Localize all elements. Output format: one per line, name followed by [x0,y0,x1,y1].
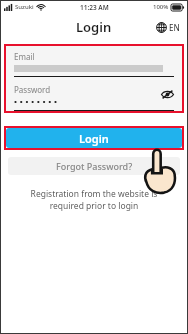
other: Tap indicator [143,148,177,194]
staticText: 100% [153,3,169,11]
button[interactable]: Email [6,46,182,77]
staticText: Email [14,51,35,62]
button[interactable]: Show password [159,88,176,101]
button[interactable]: Change language [154,20,182,35]
staticText: Login [79,131,109,146]
button[interactable]: Forgot Password? [8,157,180,175]
staticText: Suzuki [15,3,34,11]
staticText: 11:23 AM [80,3,109,12]
staticText: EN [169,22,180,33]
staticText: Registration from the website is require… [10,188,178,212]
button[interactable]: Password [6,77,182,111]
staticText: Login [76,18,112,36]
staticText: Forgot Password? [56,160,133,172]
button[interactable]: Login [6,128,182,148]
staticText: Password [14,84,51,95]
